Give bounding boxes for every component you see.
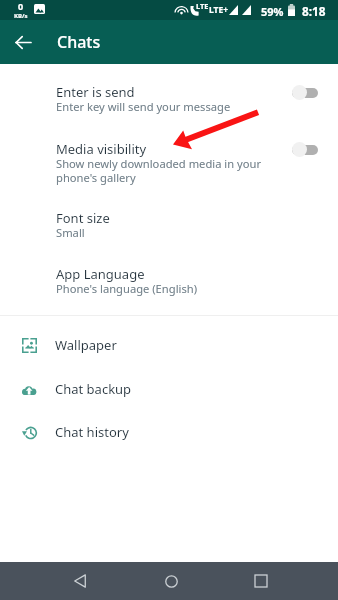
staticText: 59% xyxy=(261,4,284,19)
button[interactable]: Wallpaper xyxy=(0,336,338,362)
button[interactable]: Font size xyxy=(0,209,338,243)
button[interactable]: Chat backup xyxy=(0,380,338,406)
staticText: 0 xyxy=(18,0,24,12)
staticText: KB/s xyxy=(14,12,28,20)
button[interactable]: App Language xyxy=(0,265,338,299)
staticText: Font size xyxy=(56,209,110,227)
staticText: Media visibility xyxy=(56,140,147,158)
button[interactable]: Chat history xyxy=(0,423,338,449)
staticText: Chats xyxy=(57,31,101,53)
staticText: Enter key will send your message xyxy=(56,99,231,114)
staticText: App Language xyxy=(56,265,145,283)
button[interactable]: Home xyxy=(155,562,187,600)
button[interactable]: Recent apps xyxy=(245,562,277,600)
staticText: Phone's language (English) xyxy=(56,281,198,296)
staticText: Wallpaper xyxy=(55,336,117,354)
button[interactable]: Enter is send xyxy=(0,83,338,117)
staticText: LTE+ xyxy=(209,4,229,16)
button[interactable]: Back xyxy=(64,562,96,600)
staticText: LTE xyxy=(196,1,209,11)
staticText: Small xyxy=(56,225,85,240)
staticText: 8:18 xyxy=(302,3,326,19)
staticText: Enter is send xyxy=(56,83,135,101)
staticText: Show newly downloaded media in your phon… xyxy=(56,156,262,185)
staticText: Chat backup xyxy=(55,380,132,398)
button[interactable]: Back xyxy=(5,24,41,60)
staticText: Chat history xyxy=(55,423,129,441)
button[interactable]: Media visibility xyxy=(0,140,338,190)
